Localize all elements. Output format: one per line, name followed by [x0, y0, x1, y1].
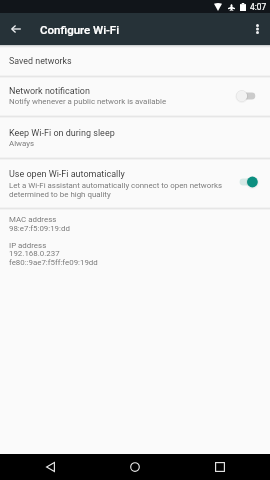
button[interactable]: Use open Wi-Fi automatically — [0, 158, 270, 209]
button[interactable]: Back — [35, 454, 65, 480]
button[interactable]: Recent apps — [205, 454, 235, 480]
button[interactable]: Saved networks — [0, 45, 270, 76]
staticText: Saved networks — [9, 56, 72, 66]
staticText: Let a Wi-Fi assistant automatically conn… — [9, 181, 224, 199]
button[interactable]: On — [234, 175, 261, 189]
button[interactable]: Navigate up — [3, 13, 29, 45]
staticText: Notify whenever a public network is avai… — [9, 97, 167, 106]
staticText: Network notification — [9, 86, 90, 97]
button[interactable]: Off — [234, 89, 261, 103]
staticText: IP address — [9, 241, 47, 250]
staticText: 4:07 — [250, 2, 267, 12]
button[interactable]: More options — [244, 13, 270, 45]
staticText: 98:e7:f5:09:19:dd — [9, 224, 70, 233]
staticText: Use open Wi-Fi automatically — [9, 169, 125, 180]
staticText: fe80::9ae7:f5ff:fe09:19dd — [9, 258, 98, 267]
staticText: Always — [9, 139, 35, 148]
staticText: Configure Wi-Fi — [40, 23, 120, 36]
button[interactable]: Home — [120, 454, 150, 480]
staticText: MAC address — [9, 215, 57, 224]
staticText: 192.168.0.237 — [9, 249, 60, 258]
button[interactable]: Network notification — [0, 76, 270, 116]
staticText: Keep Wi-Fi on during sleep — [9, 128, 115, 139]
button[interactable]: Keep Wi-Fi on during sleep — [0, 116, 270, 158]
